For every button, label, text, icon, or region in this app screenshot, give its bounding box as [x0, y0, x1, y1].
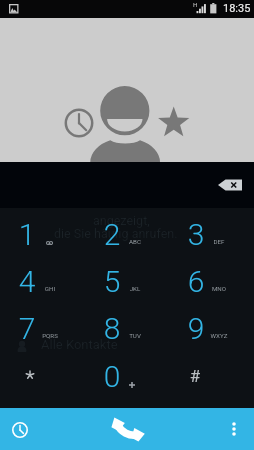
staticText: 5	[103, 264, 121, 299]
button[interactable]: More options	[224, 416, 244, 442]
staticText: 0	[103, 359, 121, 394]
staticText: 6	[187, 264, 205, 299]
staticText: 2	[103, 217, 121, 252]
button[interactable]: Backspace	[218, 176, 246, 194]
button[interactable]: 5	[85, 260, 170, 307]
button[interactable]: Recent calls	[4, 414, 35, 445]
staticText: PQRS	[28, 332, 72, 339]
staticText: 18:35	[223, 2, 251, 15]
staticText: angezeigt,	[93, 213, 150, 228]
button[interactable]	[0, 355, 85, 402]
staticText: ABC	[113, 238, 157, 245]
button[interactable]: 2	[85, 213, 170, 260]
staticText: 1	[18, 217, 36, 252]
staticText: 7	[18, 311, 36, 346]
staticText: H	[193, 1, 198, 9]
staticText: TUV	[113, 332, 157, 339]
button[interactable]: 6	[169, 260, 254, 307]
staticText: GHI	[28, 285, 72, 292]
staticText: 3	[187, 217, 205, 252]
button[interactable]: 4	[0, 260, 85, 307]
staticText: DEF	[197, 238, 241, 245]
staticText: 4	[18, 264, 36, 299]
staticText: MNO	[197, 285, 241, 292]
button[interactable]: 3	[169, 213, 254, 260]
staticText: 8	[103, 311, 121, 346]
button[interactable]: 1	[0, 213, 85, 260]
button[interactable]: 9	[169, 307, 254, 354]
button[interactable]: 0	[85, 355, 170, 402]
button[interactable]: 8	[85, 307, 170, 354]
button[interactable]: #	[169, 355, 254, 402]
staticText: 9	[187, 311, 205, 346]
button[interactable]: Dialpad	[110, 412, 144, 446]
staticText: #	[186, 366, 204, 386]
staticText: JKL	[113, 285, 157, 292]
button[interactable]: 7	[0, 307, 85, 354]
staticText: WXYZ	[197, 332, 241, 339]
staticText: die Sie häufig anrufen.	[54, 226, 178, 241]
staticText: Alle Kontakte	[41, 337, 118, 352]
